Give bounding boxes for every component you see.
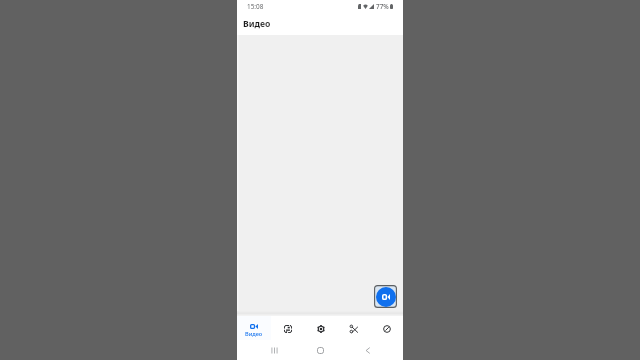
button[interactable]: Эффекты <box>304 316 337 340</box>
staticText: 15:08 <box>247 2 264 11</box>
button[interactable]: Видео <box>237 316 271 340</box>
button[interactable]: Шаблоны <box>271 316 304 340</box>
button[interactable]: Back <box>360 340 375 360</box>
button[interactable]: Home <box>313 340 328 360</box>
button[interactable]: Создать видео <box>374 285 397 308</box>
button[interactable]: Справка <box>370 316 403 340</box>
button[interactable]: Обрезка <box>337 316 370 340</box>
staticText: Видео <box>245 330 263 338</box>
staticText: 77% <box>376 2 389 11</box>
staticText: Видео <box>243 18 271 30</box>
button[interactable]: Recents <box>267 340 282 360</box>
